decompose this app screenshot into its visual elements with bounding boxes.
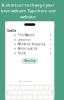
- button[interactable]: New list: [21, 58, 38, 64]
- staticText: Books: [18, 51, 26, 55]
- staticText: best website. Type here, use: [0, 8, 55, 13]
- button[interactable]: Groceries: [5, 37, 54, 42]
- staticText: New list: [24, 59, 35, 63]
- button[interactable]: Weekend shopping: [5, 42, 54, 46]
- staticText: A shortcut to change your: [1, 2, 54, 7]
- staticText: Pets Wanted: [18, 33, 35, 37]
- staticText: Winter coat list: [18, 47, 38, 50]
- staticText: Groceries: [18, 38, 31, 41]
- button[interactable]: Winter coat list: [5, 46, 54, 51]
- button[interactable]: Books: [5, 51, 54, 55]
- staticText: Lists: [7, 28, 16, 33]
- staticText: Weekend shopping: [18, 42, 46, 46]
- staticText: website.: [20, 14, 36, 19]
- button[interactable]: Pets Wanted: [5, 33, 54, 37]
